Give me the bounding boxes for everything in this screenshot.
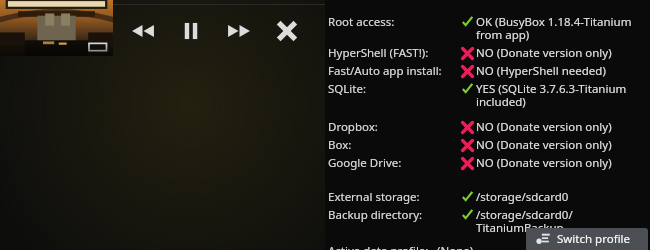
button[interactable]: Google Drive: [325, 154, 650, 172]
staticText: YES (SQLite 3.7.6.3-Titanium included) [476, 81, 627, 110]
button[interactable]: Fast forward [219, 9, 259, 53]
staticText: OK (BusyBox 1.18.4-Titanium from app) [476, 14, 632, 43]
button[interactable]: HyperShell (FAST!): [325, 44, 650, 62]
staticText: NO (HyperShell needed) [476, 63, 606, 79]
staticText: Google Drive: [328, 155, 458, 171]
button[interactable]: Rewind [123, 9, 163, 53]
staticText: Fast/Auto app install: [328, 63, 458, 79]
staticText: NO (Donate version only) [476, 45, 612, 61]
button[interactable]: Pause [171, 9, 211, 53]
button[interactable]: Dropbox: [325, 118, 650, 136]
staticText: Backup directory: [328, 207, 458, 223]
staticText: Box: [328, 137, 458, 153]
button[interactable]: Close [267, 9, 307, 53]
button[interactable]: Fast/Auto app install: [325, 62, 650, 80]
staticText: Active data profile: [328, 243, 429, 250]
staticText: /storage/sdcard0 [476, 189, 569, 205]
button[interactable]: Backup directory: [325, 206, 650, 237]
staticText: HyperShell (FAST!): [328, 45, 458, 61]
button[interactable]: Box: [325, 136, 650, 154]
staticText: (None) [437, 243, 474, 250]
button[interactable]: Switch profile [526, 228, 648, 250]
staticText: SQLite: [328, 81, 458, 97]
staticText: NO (Donate version only) [476, 155, 612, 171]
staticText: NO (Donate version only) [476, 137, 612, 153]
button[interactable]: Root access: [325, 13, 650, 44]
staticText: NO (Donate version only) [476, 119, 612, 135]
staticText: /storage/sdcard0/ TitaniumBackup [476, 207, 573, 236]
staticText: Switch profile [557, 231, 631, 247]
staticText: External storage: [328, 189, 458, 205]
button[interactable]: SQLite: [325, 80, 650, 111]
button[interactable]: External storage: [325, 188, 650, 206]
staticText: Dropbox: [328, 119, 458, 135]
staticText: Root access: [328, 14, 458, 30]
